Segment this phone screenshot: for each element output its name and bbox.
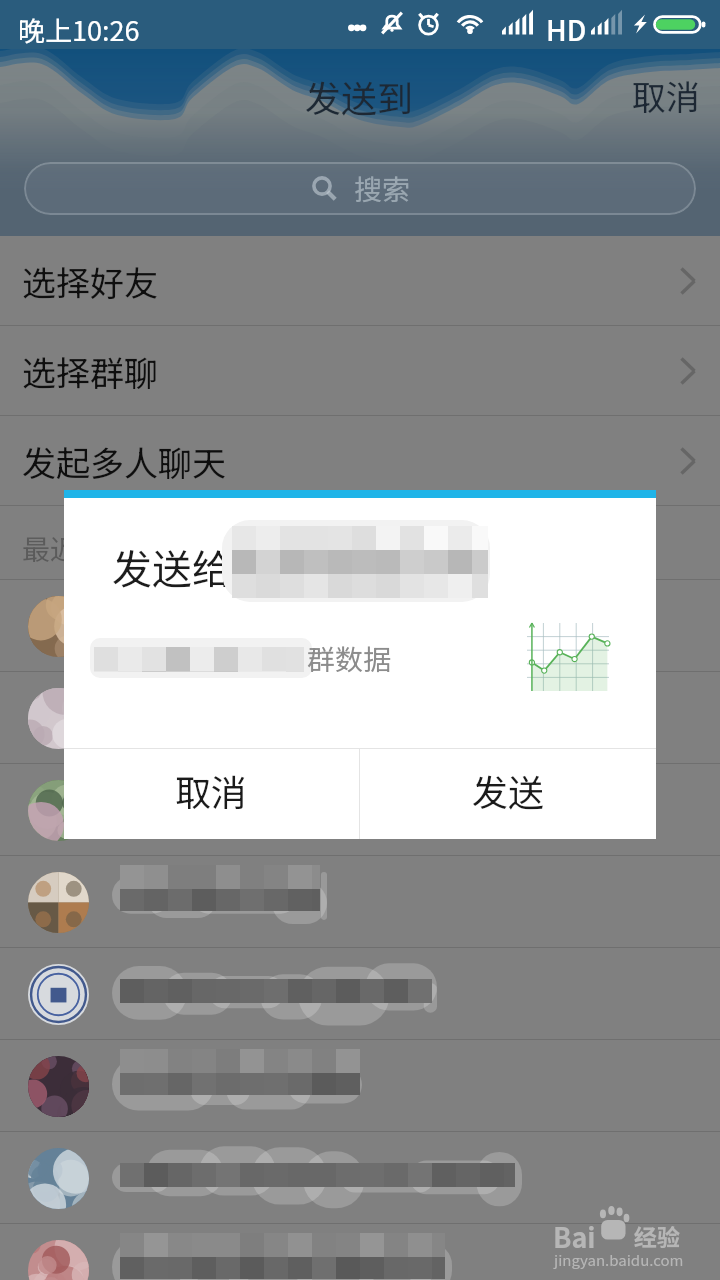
other: 电量 bbox=[653, 13, 705, 36]
other: 发起多人聊天 bbox=[680, 447, 696, 475]
other: 选择好友 bbox=[680, 267, 696, 295]
button[interactable]: 发起多人聊天 bbox=[0, 416, 720, 506]
staticText: 经验 bbox=[634, 1219, 680, 1252]
button[interactable] bbox=[0, 856, 720, 948]
staticText: 选择好友 bbox=[22, 257, 158, 306]
other: 充电 bbox=[631, 11, 649, 36]
button[interactable] bbox=[0, 764, 720, 856]
staticText: 群数据 bbox=[307, 638, 392, 679]
staticText: 搜索 bbox=[354, 168, 411, 209]
other: 信号2 bbox=[591, 12, 622, 36]
staticText: 取消 bbox=[175, 764, 248, 816]
staticText: 发送到 bbox=[305, 70, 414, 122]
other: 闹钟 bbox=[415, 10, 442, 37]
button[interactable]: 选择好友 bbox=[0, 236, 720, 326]
staticText: 晚上10:26 bbox=[18, 10, 140, 49]
staticText: HD bbox=[546, 9, 587, 50]
button[interactable]: 选择群聊 bbox=[0, 326, 720, 416]
button[interactable] bbox=[0, 672, 720, 764]
other: 选择群聊 bbox=[680, 357, 696, 385]
staticText: 发起多人聊天 bbox=[22, 437, 226, 486]
other: WiFi bbox=[455, 11, 485, 37]
staticText: Bai bbox=[553, 1217, 596, 1256]
button[interactable] bbox=[0, 1224, 720, 1280]
button[interactable] bbox=[0, 580, 720, 672]
button[interactable]: 搜索 bbox=[24, 162, 696, 215]
button[interactable]: 取消 bbox=[64, 749, 359, 839]
staticText: 取消 bbox=[632, 71, 700, 120]
button[interactable]: 发送 bbox=[360, 749, 656, 839]
staticText: jingyan.baidu.com bbox=[554, 1249, 684, 1271]
staticText: 选择群聊 bbox=[22, 347, 158, 396]
other: 更多 bbox=[348, 12, 366, 36]
other: 信号 bbox=[502, 12, 533, 36]
staticText: 发送给 bbox=[112, 538, 232, 596]
staticText: 最近 bbox=[22, 528, 79, 569]
other: 静音 bbox=[379, 10, 405, 36]
button[interactable] bbox=[0, 948, 720, 1040]
staticText: 发送 bbox=[472, 764, 545, 816]
button[interactable] bbox=[0, 1040, 720, 1132]
button[interactable]: 取消 bbox=[618, 61, 714, 130]
button[interactable] bbox=[0, 1132, 720, 1224]
